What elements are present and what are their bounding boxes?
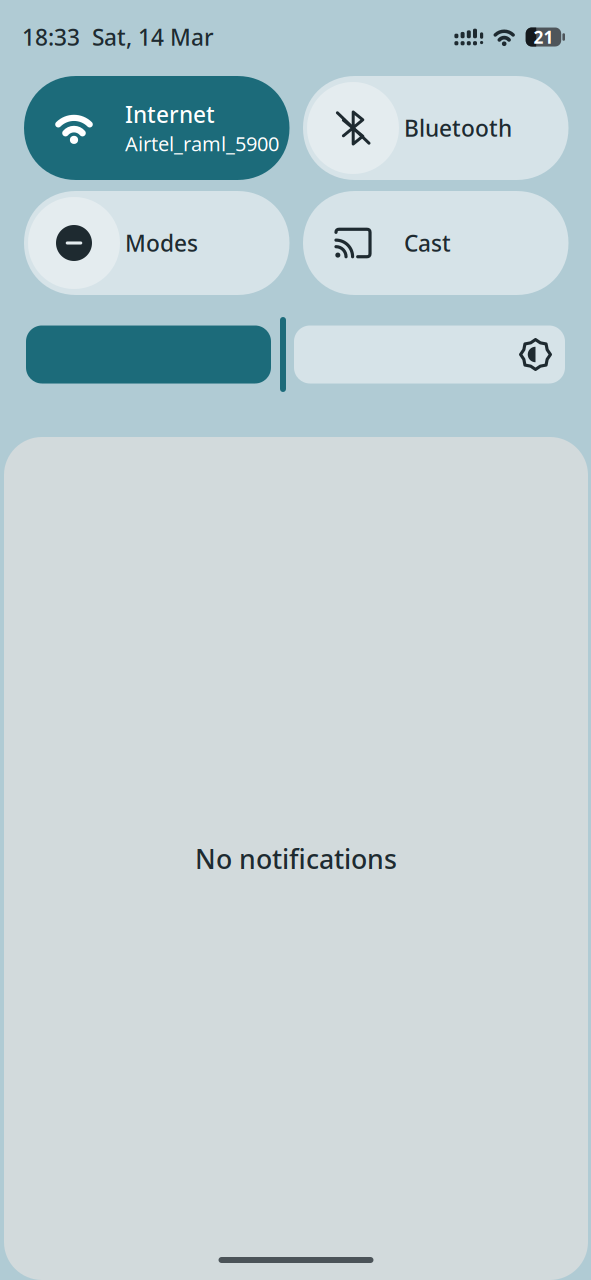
staticText: Sat, 14 Mar — [92, 22, 214, 52]
button[interactable]: Bluetooth — [303, 76, 568, 180]
button[interactable]: Internet — [24, 76, 289, 180]
staticText: Cast — [404, 228, 451, 258]
staticText: No notifications — [195, 841, 397, 876]
staticText: 21 — [533, 25, 553, 48]
staticText: Bluetooth — [404, 113, 512, 143]
staticText: 18:33 — [22, 22, 80, 52]
staticText: Airtel_raml_5900 — [125, 130, 279, 157]
staticText: Internet — [125, 99, 215, 129]
staticText: Modes — [125, 228, 198, 258]
button[interactable]: Cast — [303, 191, 568, 295]
button[interactable]: Modes — [24, 191, 289, 295]
button[interactable]: Brightness — [0, 317, 591, 392]
